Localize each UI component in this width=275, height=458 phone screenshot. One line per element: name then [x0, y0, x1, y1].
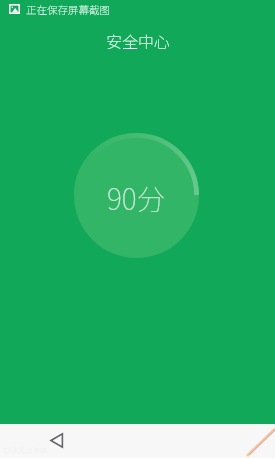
button[interactable]: Security score 90 — [74, 133, 199, 258]
staticText: 90分 — [107, 177, 166, 218]
button[interactable]: Back — [42, 423, 72, 457]
staticText: 正在保存屏幕截图 — [26, 2, 110, 17]
staticText: 安全中心 — [106, 29, 171, 52]
